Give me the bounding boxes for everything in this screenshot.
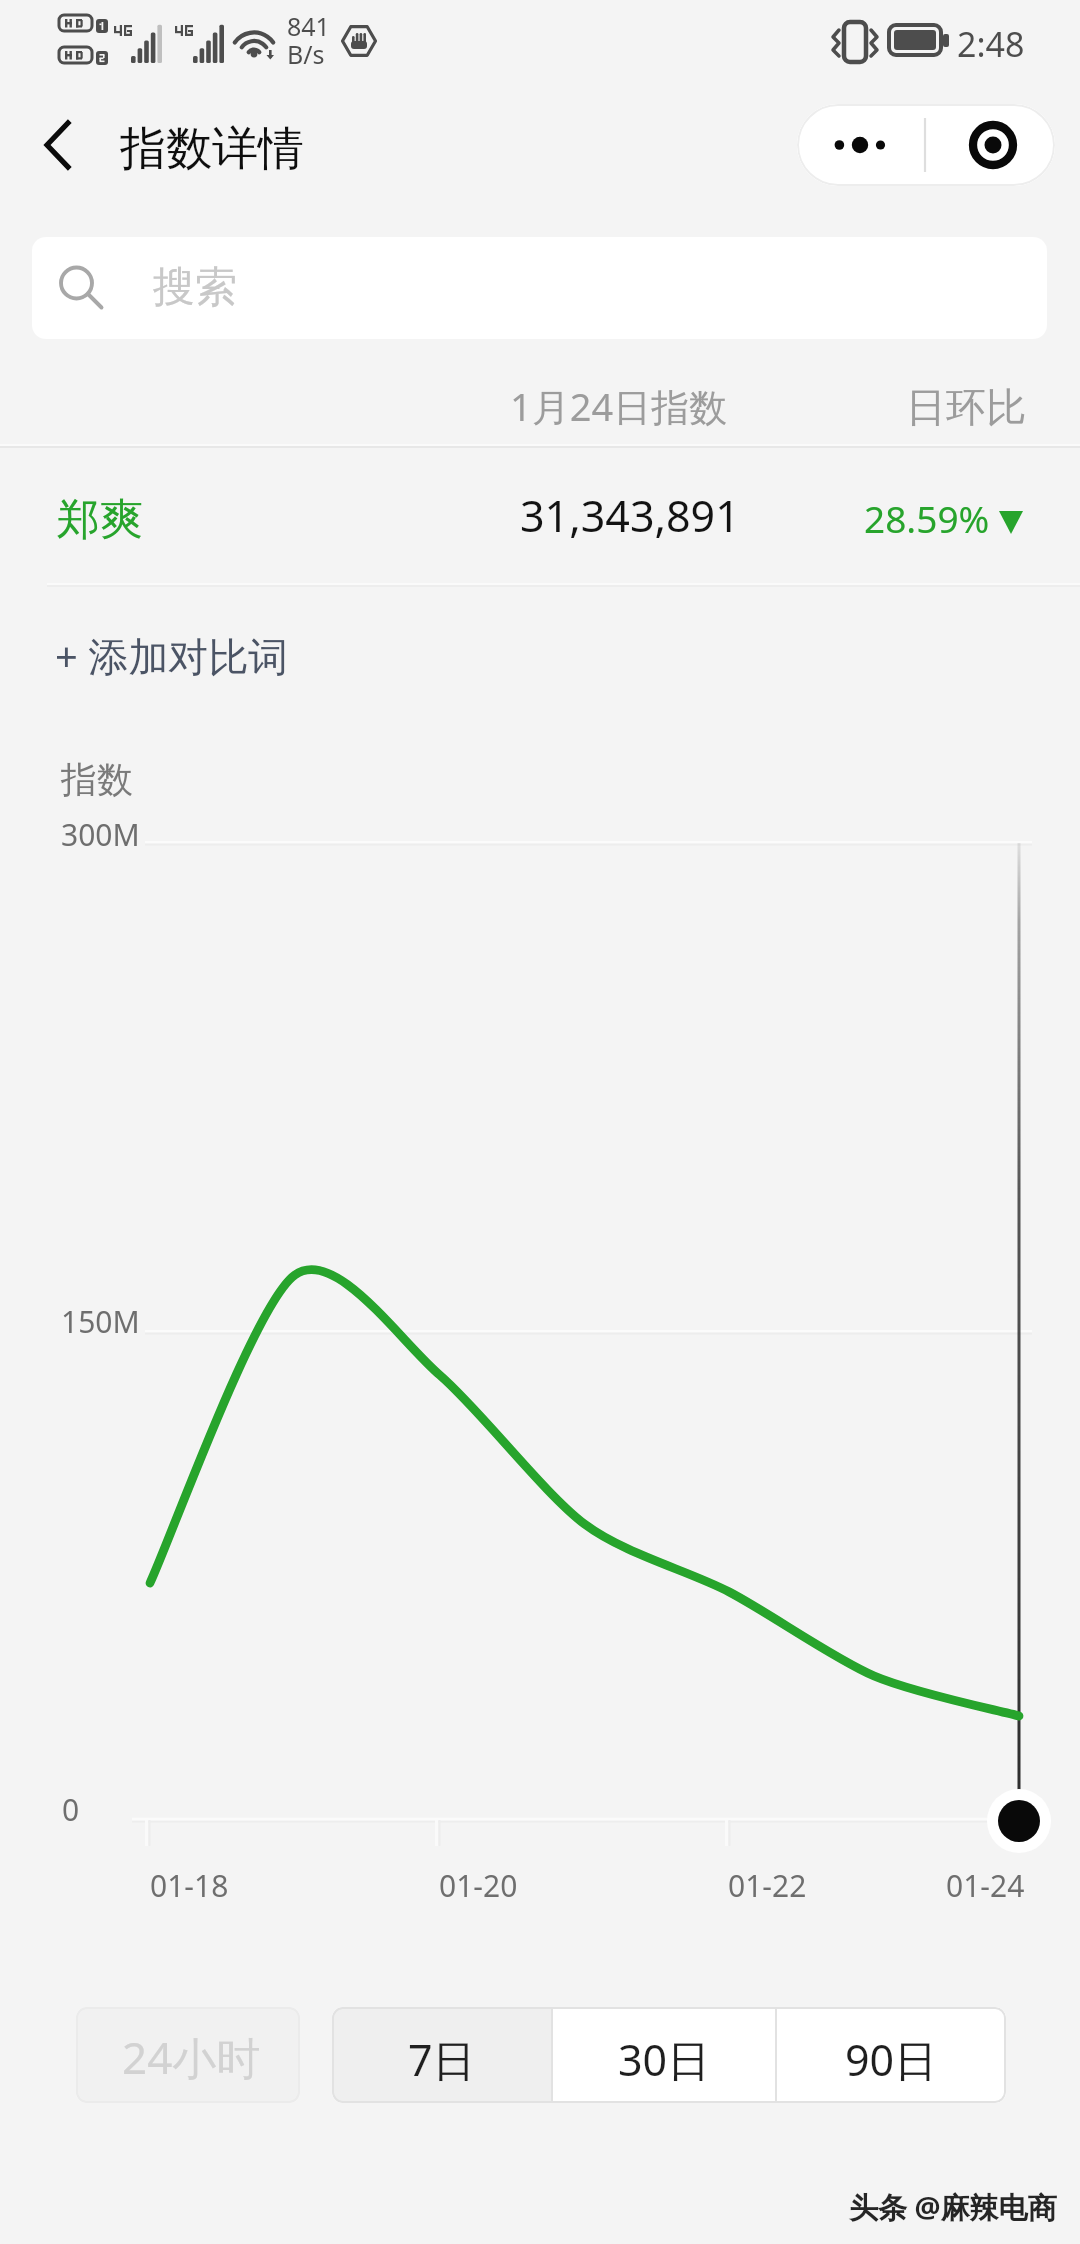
staticText: 01-24	[946, 1865, 1025, 1906]
staticText: 841	[287, 9, 330, 43]
button[interactable]: 30日	[553, 2007, 775, 2103]
staticText: 01-22	[728, 1865, 807, 1906]
staticText: 150M	[61, 1301, 140, 1342]
button[interactable]: + 添加对比词	[45, 614, 305, 698]
staticText: 0	[62, 1789, 80, 1830]
staticText: 300M	[61, 814, 140, 855]
staticText: 指数	[61, 757, 133, 802]
button[interactable]: Close mini program	[926, 104, 1055, 186]
staticText: 30日	[618, 2030, 711, 2089]
staticText: B/s	[287, 37, 325, 71]
staticText: 90日	[845, 2030, 938, 2089]
button[interactable]: 搜索	[32, 237, 1047, 339]
button[interactable]: 90日	[777, 2007, 1006, 2103]
staticText: 01-18	[150, 1865, 229, 1906]
staticText: 郑爽	[57, 493, 143, 547]
staticText: 2:48	[957, 21, 1025, 67]
staticText: 01-20	[439, 1865, 518, 1906]
button[interactable]: 7日	[332, 2007, 551, 2103]
button[interactable]: Back	[22, 111, 92, 181]
button[interactable]: 郑爽	[0, 448, 1080, 586]
button[interactable]: More options	[797, 104, 926, 186]
staticText: 7日	[408, 2030, 476, 2089]
staticText: 日环比	[906, 382, 1026, 432]
staticText: 搜索	[153, 261, 237, 314]
staticText: 头条 @麻辣电商	[849, 2187, 1057, 2227]
staticText: 指数详情	[120, 120, 304, 178]
staticText: 31,343,891	[520, 486, 740, 545]
staticText: 1月24日指数	[510, 380, 728, 432]
staticText: 24小时	[122, 2027, 261, 2087]
button[interactable]: 24小时	[76, 2007, 300, 2103]
staticText: 28.59%	[864, 493, 990, 543]
staticText: + 添加对比词	[55, 628, 289, 683]
